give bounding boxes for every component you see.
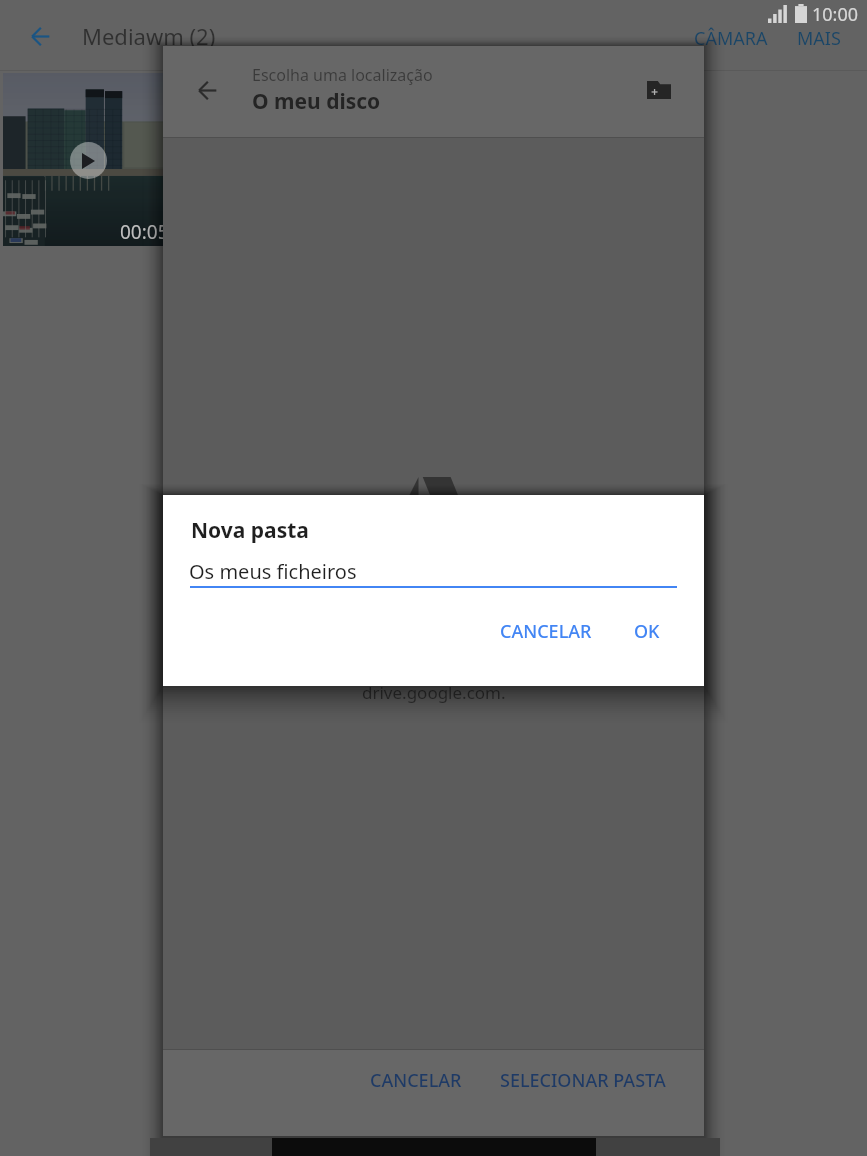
button[interactable]: CANCELAR [358, 1057, 474, 1104]
staticText: CANCELAR [500, 619, 592, 644]
staticText: CÂMARA [694, 26, 768, 51]
button[interactable]: OK [620, 609, 674, 654]
staticText: 00:05 [120, 219, 169, 245]
button[interactable]: Back [20, 16, 61, 57]
button[interactable]: Play video [3, 73, 163, 246]
staticText: 10:00 [812, 2, 859, 27]
staticText: MAIS [797, 26, 841, 51]
button[interactable]: SELECIONAR PASTA [488, 1057, 678, 1104]
staticText: SELECIONAR PASTA [500, 1068, 666, 1093]
staticText: Nova pasta [191, 516, 309, 545]
button[interactable]: New folder [637, 67, 681, 111]
staticText: OK [634, 619, 660, 644]
button[interactable]: Back [185, 68, 229, 112]
staticText: Mediawm (2) [82, 21, 216, 51]
staticText: CANCELAR [370, 1068, 462, 1093]
button[interactable]: CÂMARA [682, 17, 780, 60]
staticText: Escolha uma localização [252, 64, 433, 86]
button[interactable]: CANCELAR [486, 609, 606, 654]
staticText: drive.google.com. [362, 681, 506, 704]
staticText: Os meus ficheiros [189, 558, 357, 585]
button[interactable]: MAIS [785, 17, 853, 60]
staticText: O meu disco [252, 87, 381, 116]
